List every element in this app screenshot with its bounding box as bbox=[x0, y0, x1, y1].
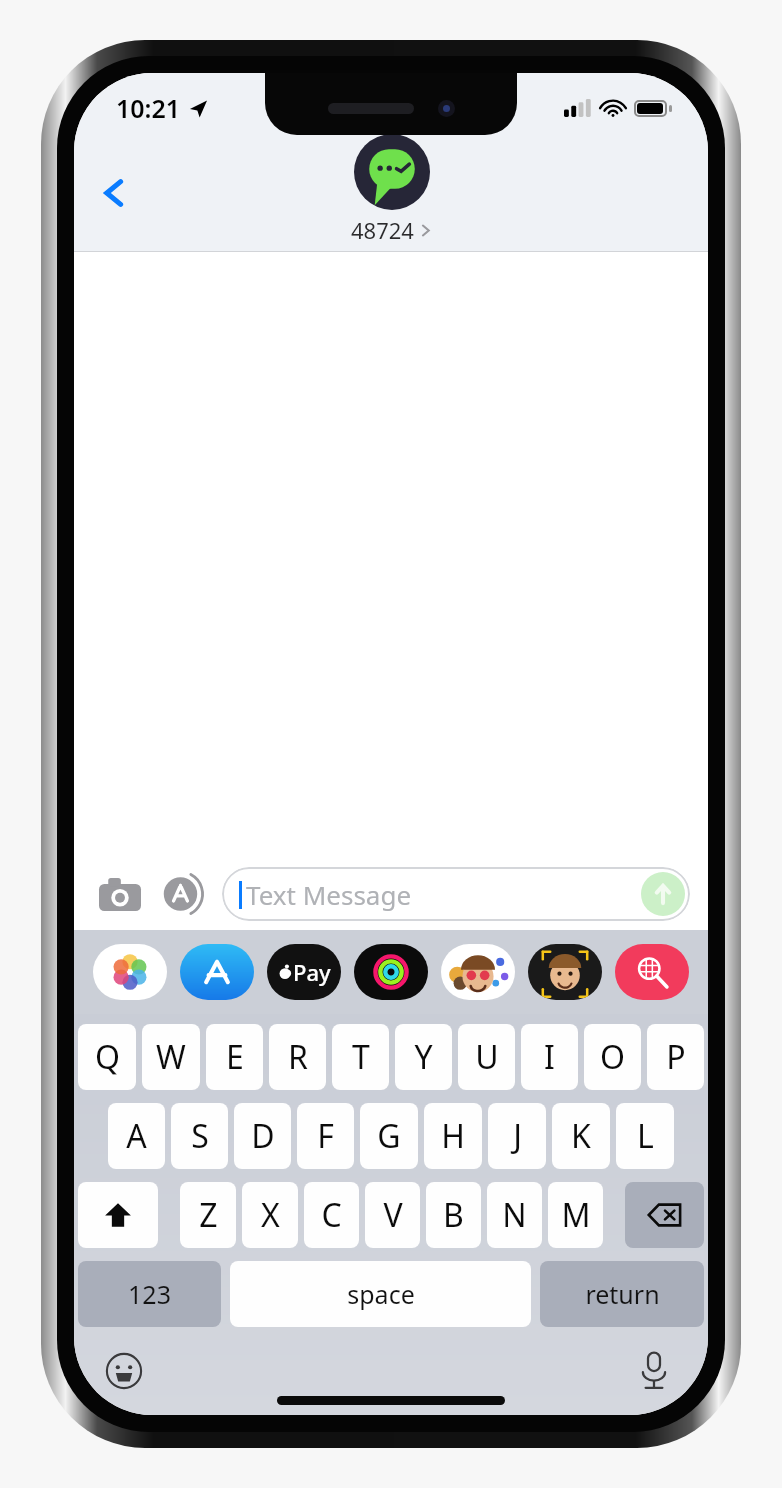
staticText: 48724 bbox=[351, 215, 414, 245]
button[interactable]: L bbox=[616, 1103, 674, 1169]
button[interactable]: Dictation bbox=[626, 1343, 682, 1399]
button[interactable]: K bbox=[552, 1103, 610, 1169]
button[interactable]: Fitness bbox=[351, 943, 431, 1001]
button[interactable]: T bbox=[332, 1024, 389, 1090]
staticText: 10:21 bbox=[116, 91, 181, 125]
staticText: J bbox=[513, 1114, 522, 1158]
staticText: I bbox=[544, 1035, 555, 1079]
staticText: 123 bbox=[128, 1277, 171, 1311]
button[interactable]: Photos bbox=[90, 943, 170, 1001]
button[interactable]: I bbox=[521, 1024, 578, 1090]
button[interactable]: E bbox=[206, 1024, 263, 1090]
staticText: T bbox=[352, 1035, 370, 1079]
staticText: B bbox=[443, 1193, 464, 1237]
button[interactable]: X bbox=[242, 1182, 298, 1248]
staticText: H bbox=[441, 1114, 465, 1158]
button[interactable]: F bbox=[297, 1103, 354, 1169]
button[interactable]: V bbox=[365, 1182, 420, 1248]
staticText: D bbox=[251, 1114, 275, 1158]
button[interactable]: Delete bbox=[625, 1182, 704, 1248]
button[interactable]: A bbox=[108, 1103, 165, 1169]
staticText: K bbox=[571, 1114, 591, 1158]
button[interactable]: S bbox=[171, 1103, 228, 1169]
button[interactable]: R bbox=[269, 1024, 326, 1090]
button[interactable]: 48724 bbox=[351, 134, 432, 245]
staticText: return bbox=[585, 1277, 660, 1311]
staticText: G bbox=[377, 1114, 401, 1158]
staticText: V bbox=[383, 1193, 403, 1237]
button[interactable]: J bbox=[488, 1103, 546, 1169]
button[interactable]: N bbox=[487, 1182, 542, 1248]
staticText: N bbox=[502, 1193, 527, 1237]
button[interactable]: return bbox=[540, 1261, 704, 1327]
button[interactable]: Send bbox=[641, 872, 685, 916]
staticText: space bbox=[347, 1277, 415, 1311]
button[interactable]: O bbox=[584, 1024, 641, 1090]
button[interactable]: Apple Pay bbox=[264, 943, 344, 1001]
button[interactable]: 123 bbox=[78, 1261, 221, 1327]
staticText: E bbox=[226, 1035, 244, 1079]
staticText: X bbox=[261, 1193, 280, 1237]
staticText: Y bbox=[414, 1035, 433, 1079]
button[interactable]: W bbox=[142, 1024, 200, 1090]
staticText: Z bbox=[199, 1193, 218, 1237]
staticText: Text Message bbox=[246, 877, 412, 912]
button[interactable]: D bbox=[234, 1103, 291, 1169]
button[interactable]: U bbox=[458, 1024, 515, 1090]
button[interactable]: Q bbox=[78, 1024, 136, 1090]
button[interactable]: C bbox=[304, 1182, 359, 1248]
button[interactable]: Shift bbox=[78, 1182, 158, 1248]
button[interactable]: Back bbox=[86, 165, 142, 221]
staticText: Pay bbox=[293, 957, 331, 987]
button[interactable]: Y bbox=[395, 1024, 452, 1090]
button[interactable]: M bbox=[548, 1182, 603, 1248]
button[interactable]: App Store bbox=[156, 866, 212, 922]
button[interactable]: Camera bbox=[92, 866, 148, 922]
staticText: S bbox=[191, 1114, 209, 1158]
button[interactable]: Emoji bbox=[96, 1343, 152, 1399]
button[interactable]: Images bbox=[612, 943, 692, 1001]
button[interactable]: Memoji bbox=[525, 943, 605, 1001]
staticText: W bbox=[156, 1035, 186, 1079]
staticText: O bbox=[600, 1035, 625, 1079]
button[interactable]: App Store bbox=[177, 943, 257, 1001]
staticText: C bbox=[321, 1193, 342, 1237]
button[interactable]: B bbox=[426, 1182, 481, 1248]
button[interactable]: Text Message bbox=[222, 867, 690, 921]
staticText: M bbox=[561, 1193, 591, 1237]
button[interactable]: G bbox=[360, 1103, 418, 1169]
staticText: P bbox=[666, 1035, 686, 1079]
staticText: F bbox=[317, 1114, 334, 1158]
button[interactable]: H bbox=[424, 1103, 482, 1169]
staticText: R bbox=[288, 1035, 308, 1079]
button[interactable]: space bbox=[230, 1261, 531, 1327]
staticText: U bbox=[475, 1035, 499, 1079]
staticText: A bbox=[126, 1114, 147, 1158]
button[interactable]: Z bbox=[180, 1182, 236, 1248]
staticText: L bbox=[637, 1114, 654, 1158]
button[interactable]: P bbox=[647, 1024, 704, 1090]
staticText: Q bbox=[95, 1035, 120, 1079]
button[interactable]: Stickers bbox=[438, 943, 518, 1001]
